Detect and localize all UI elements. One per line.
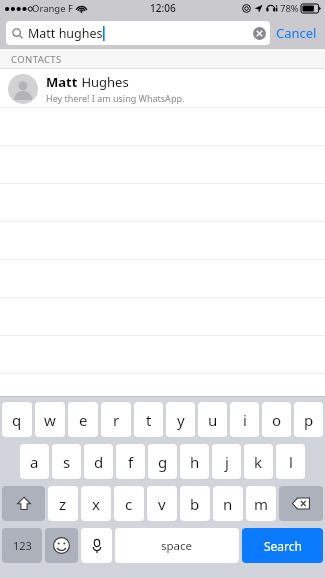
staticText: i <box>243 410 247 430</box>
staticText: f <box>128 452 134 472</box>
staticText: space <box>161 538 193 554</box>
staticText: n <box>223 494 233 514</box>
button[interactable]: o <box>262 402 291 437</box>
staticText: Matt <box>46 73 78 91</box>
button[interactable]: c <box>114 486 144 521</box>
button[interactable]: Clear text <box>253 27 266 40</box>
staticText: d <box>94 452 104 472</box>
staticText: w <box>44 410 56 430</box>
staticText: r <box>113 410 120 430</box>
staticText: h <box>190 452 200 472</box>
staticText: p <box>304 410 314 430</box>
staticText: Search <box>264 538 302 554</box>
button[interactable]: e <box>68 402 98 437</box>
staticText: 12:06 <box>150 1 176 15</box>
button[interactable]: Matt hughes <box>6 21 270 45</box>
staticText: CONTACTS <box>11 53 62 66</box>
button[interactable]: a <box>20 444 49 479</box>
button[interactable]: 123 <box>2 528 42 563</box>
button[interactable]: f <box>116 444 145 479</box>
button[interactable]: Search <box>242 528 323 563</box>
staticText: Cancel <box>276 24 317 42</box>
button[interactable]: s <box>52 444 81 479</box>
staticText: x <box>92 494 100 514</box>
staticText: 78% <box>280 2 299 15</box>
button[interactable]: w <box>35 402 65 437</box>
button[interactable]: l <box>276 444 305 479</box>
staticText: q <box>12 410 22 430</box>
staticText: m <box>254 494 269 514</box>
button[interactable]: q <box>2 402 32 437</box>
button[interactable]: g <box>148 444 177 479</box>
staticText: v <box>158 494 166 514</box>
button[interactable]: i <box>230 402 259 437</box>
staticText: s <box>63 452 71 472</box>
staticText: Orange F <box>32 2 73 15</box>
staticText: j <box>225 452 229 472</box>
button[interactable]: n <box>213 486 243 521</box>
button[interactable]: y <box>166 402 195 437</box>
button[interactable]: Dictation <box>81 528 112 563</box>
staticText: y <box>177 410 185 430</box>
staticText: z <box>59 494 67 514</box>
button[interactable]: d <box>84 444 113 479</box>
button[interactable]: p <box>294 402 323 437</box>
button[interactable]: space <box>115 528 239 563</box>
staticText: u <box>208 410 218 430</box>
staticText: e <box>79 410 88 430</box>
button[interactable]: k <box>244 444 273 479</box>
staticText: c <box>125 494 133 514</box>
staticText: l <box>289 452 293 472</box>
button[interactable]: r <box>101 402 131 437</box>
button[interactable]: u <box>198 402 227 437</box>
button[interactable]: Matt <box>0 69 325 108</box>
staticText: k <box>254 452 263 472</box>
button[interactable]: z <box>48 486 78 521</box>
button[interactable]: j <box>212 444 241 479</box>
button[interactable]: v <box>147 486 177 521</box>
button[interactable]: t <box>134 402 163 437</box>
staticText: 123 <box>13 538 32 553</box>
staticText: g <box>158 452 168 472</box>
staticText: Hey there! I am using WhatsApp. <box>46 92 185 104</box>
button[interactable]: b <box>180 486 210 521</box>
staticText: t <box>146 410 152 430</box>
staticText: Hughes <box>78 73 129 91</box>
button[interactable]: Shift <box>2 486 45 521</box>
button[interactable]: x <box>81 486 111 521</box>
button[interactable]: h <box>180 444 209 479</box>
button[interactable]: m <box>246 486 276 521</box>
staticText: b <box>190 494 200 514</box>
button[interactable]: Cancel <box>276 24 317 42</box>
button[interactable]: Backspace <box>279 486 323 521</box>
staticText: Matt hughes <box>28 25 103 42</box>
staticText: a <box>30 452 39 472</box>
button[interactable]: Emoji <box>45 528 78 563</box>
staticText: o <box>272 410 282 430</box>
